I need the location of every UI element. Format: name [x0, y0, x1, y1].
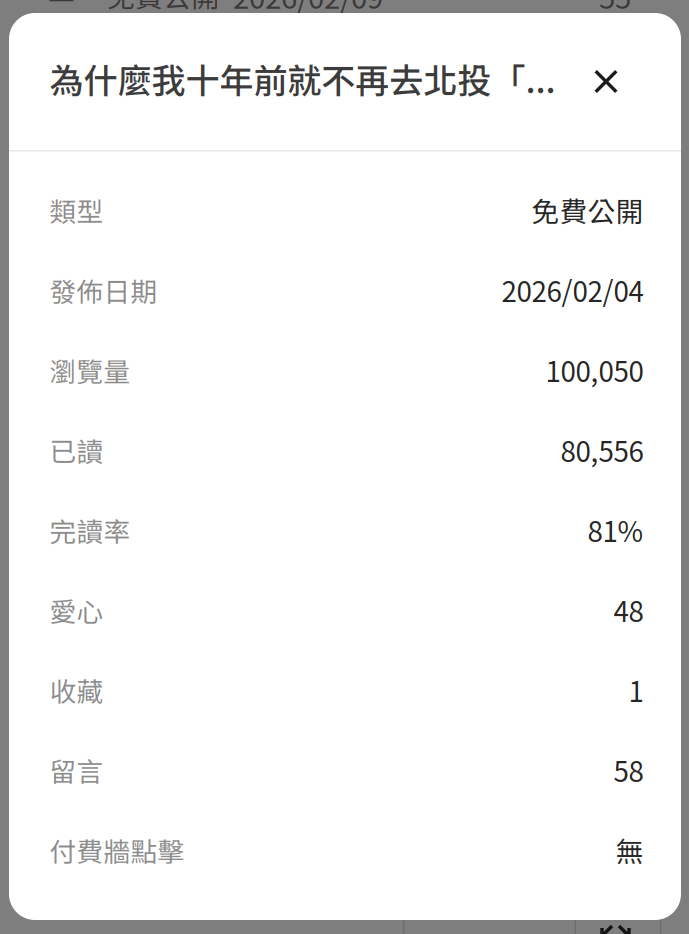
staticText: 58 [613, 750, 643, 790]
staticText: 48 [613, 590, 643, 630]
staticText: 1 [628, 670, 643, 710]
button[interactable]: Expand [0, 918, 31, 930]
staticText: 完讀率 [49, 511, 130, 549]
staticText: 55 [599, 0, 631, 17]
staticText: 81% [587, 510, 643, 550]
staticText: 免費公開 [107, 0, 219, 15]
staticText: 愛心 [49, 591, 103, 629]
button[interactable]: Close [578, 53, 634, 109]
staticText: 2026/02/04 [501, 270, 643, 310]
staticText: 收藏 [49, 671, 103, 709]
staticText: 100,050 [545, 350, 643, 390]
staticText: 2026/02/09 [233, 0, 383, 17]
staticText: 留言 [49, 751, 103, 789]
staticText: 80,556 [560, 430, 643, 470]
staticText: 瀏覽量 [49, 351, 130, 389]
staticText: 免費公開 [531, 190, 643, 230]
staticText: 發佈日期 [49, 271, 157, 309]
staticText: 無 [615, 830, 643, 870]
staticText: 類型 [49, 191, 103, 229]
staticText: 為什麼我十年前就不再去北投「... [49, 54, 555, 103]
staticText: 付費牆點擊 [49, 831, 184, 869]
staticText: 已讀 [49, 431, 103, 469]
